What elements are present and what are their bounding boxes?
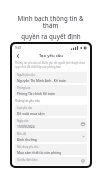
button[interactable]: Nội dung yêu cầu (15, 144, 87, 155)
button[interactable]: Ngày cần (15, 118, 87, 129)
staticText: Tài liệu đính kèm (17, 158, 38, 162)
staticText: 15/09/2024 (17, 124, 35, 128)
staticText: quyền ra quyết định (21, 32, 81, 40)
staticText: Đề xuất mua sắm (17, 111, 45, 115)
staticText: Minh bạch thông tin & thẩm (9, 14, 92, 30)
staticText: Loại yêu cầu (17, 106, 33, 110)
staticText: Phòng Tài chính Kế toán (17, 91, 55, 95)
staticText: Phòng ban (17, 86, 31, 90)
staticText: Mua sắm thiết bị văn phòng (17, 150, 62, 154)
staticText: Ngày cần (17, 119, 29, 123)
button[interactable]: Mức độ (15, 131, 87, 142)
button[interactable]: Tài liệu đính kèm (15, 157, 87, 165)
staticText: Thông tin yêu cầu (15, 99, 40, 103)
button[interactable]: Phòng ban (15, 85, 87, 96)
button[interactable]: Người yêu cầu (15, 72, 87, 83)
staticText: Người yêu cầu (17, 73, 35, 77)
staticText: Thông tin yêu cầu sẽ được gửi tới người … (15, 61, 87, 69)
staticText: Nguyễn Thị Minh Anh - Kế toán (17, 78, 66, 82)
staticText: 9:41 (15, 46, 22, 50)
staticText: Nội dung yêu cầu (17, 145, 39, 149)
staticText: Bình thường (17, 137, 37, 141)
staticText: Mức độ (17, 132, 27, 136)
button[interactable]: Loại yêu cầu (15, 105, 87, 116)
button[interactable]: Back (14, 52, 21, 59)
staticText: Tạo yêu cầu (39, 53, 63, 59)
